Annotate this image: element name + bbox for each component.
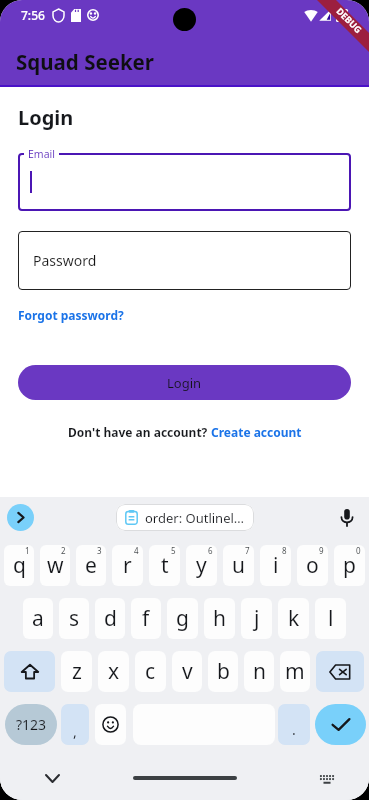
staticText: g [176,604,189,633]
staticText: 4 [134,545,139,556]
staticText: 3 [97,545,102,556]
staticText: 9 [319,545,324,556]
button[interactable]: f [131,598,161,639]
staticText: 6 [208,545,213,556]
button[interactable]: Login [18,365,351,400]
staticText: b [217,657,230,686]
button[interactable]: d [95,598,125,639]
staticText: i [273,551,279,580]
staticText: 7 [245,545,250,556]
staticText: 5 [171,545,176,556]
button[interactable]: Forgot password? [18,307,124,323]
staticText: s [69,604,80,633]
staticText: ?123 [16,715,47,734]
button[interactable]: a [23,598,53,639]
button[interactable]: n [244,651,274,692]
button[interactable]: Hide keyboard [40,766,64,790]
staticText: Forgot password? [18,307,124,323]
staticText: l [328,604,334,633]
staticText: 8 [282,545,287,556]
staticText: t [161,551,169,580]
button[interactable]: Password [18,231,351,290]
button[interactable]: Expand suggestions [7,504,34,531]
staticText: a [32,604,44,633]
staticText: y [196,551,207,580]
staticText: . [292,720,296,739]
button[interactable]: Enter [315,704,366,745]
staticText: Don't have an account? [68,424,211,440]
staticText: h [213,604,226,633]
button[interactable]: b [208,651,238,692]
button[interactable]: x [98,651,129,692]
staticText: Squad Seeker [16,48,155,76]
button[interactable]: k [278,598,309,639]
button[interactable]: w [40,545,70,586]
staticText: Email [28,147,55,161]
staticText: m [285,657,305,686]
staticText: n [253,657,266,686]
button[interactable]: t [149,545,180,586]
staticText: z [72,657,82,686]
button[interactable]: q [4,545,34,586]
staticText: 7:56 [21,7,45,23]
button[interactable]: Shift [4,651,55,692]
staticText: f [142,604,150,633]
staticText: x [108,657,120,686]
staticText: d [104,604,117,633]
staticText: w [47,551,64,580]
button[interactable]: g [167,598,198,639]
button[interactable]: , [61,704,89,745]
button[interactable]: e [76,545,106,586]
staticText: k [288,604,300,633]
button[interactable]: l [315,598,346,639]
button[interactable]: Voice input [333,504,360,531]
staticText: p [343,551,356,580]
staticText: Login [18,104,74,131]
button[interactable]: h [204,598,235,639]
button[interactable]: c [135,651,166,692]
staticText: Login [167,374,202,392]
button[interactable]: v [172,651,202,692]
button[interactable]: p [334,545,365,586]
button[interactable]: Switch keyboard [315,766,339,790]
staticText: q [13,551,26,580]
staticText: r [123,551,132,580]
staticText: v [182,657,193,686]
staticText: 1 [25,545,30,556]
button[interactable]: u [223,545,254,586]
button[interactable]: o [297,545,328,586]
staticText: Create account [211,424,302,440]
button[interactable] [18,153,351,211]
button[interactable]: Backspace [316,651,364,692]
button[interactable]: m [280,651,310,692]
button[interactable]: i [260,545,291,586]
button[interactable]: order: Outlinel… [116,504,254,531]
button[interactable]: s [59,598,89,639]
staticText: 0 [356,545,361,556]
button[interactable]: j [241,598,272,639]
staticText: order: Outlinel… [145,509,245,527]
button[interactable]: ?123 [5,704,57,745]
button[interactable]: Emoji [95,704,126,745]
button[interactable]: r [112,545,143,586]
staticText: o [306,551,319,580]
button[interactable]: y [186,545,217,586]
staticText: Password [33,251,97,270]
staticText: DEBUG [334,5,365,35]
staticText: , [73,722,77,741]
staticText: c [145,657,156,686]
staticText: 2 [61,545,66,556]
button[interactable]: . [278,704,310,745]
staticText: e [85,551,97,580]
button[interactable]: z [61,651,92,692]
staticText: u [232,551,245,580]
button[interactable]: Create account [211,424,302,440]
staticText: j [254,604,260,633]
